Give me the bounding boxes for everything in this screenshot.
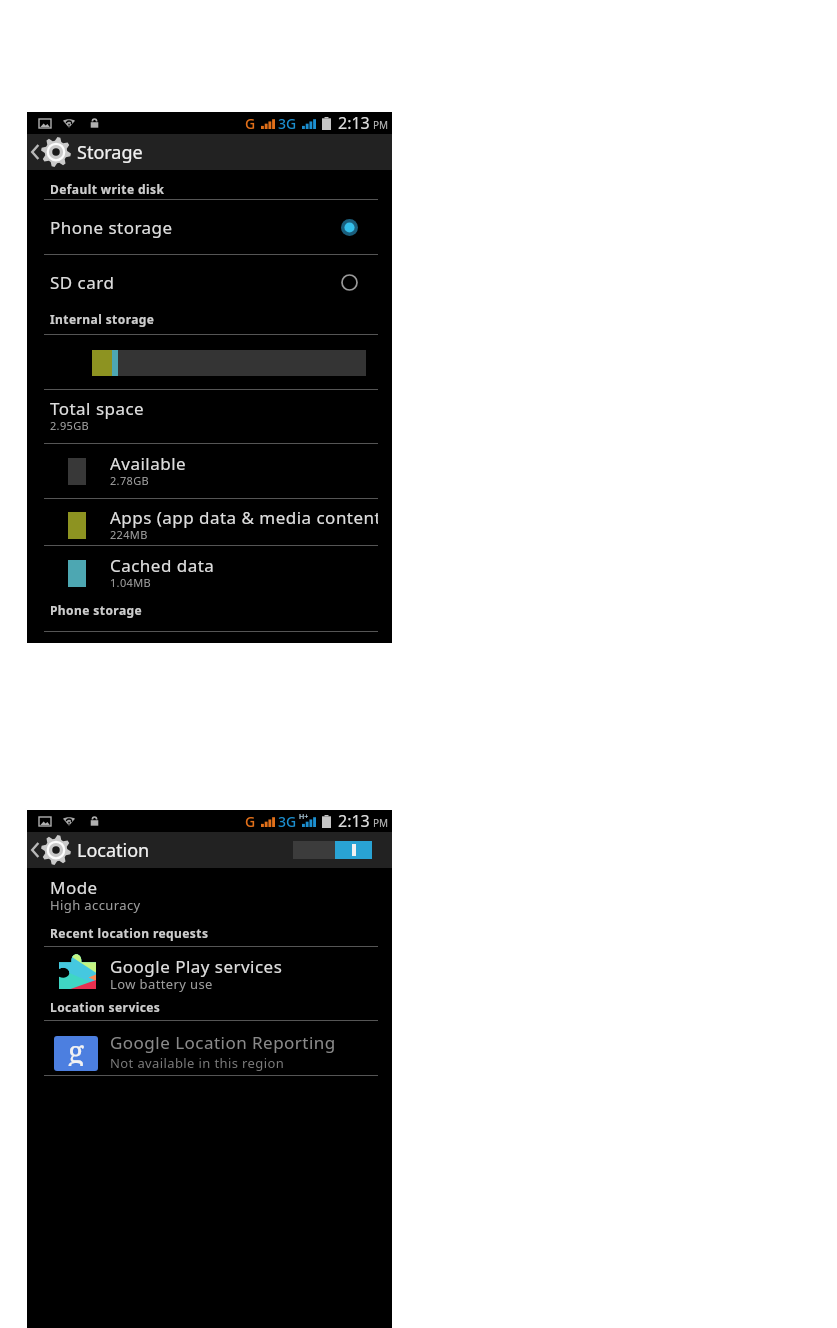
button[interactable]: Location on/off [293, 841, 372, 859]
staticText: 2.95GB [50, 418, 89, 433]
staticText: 3G [278, 114, 297, 133]
staticText: Apps (app data & media content) [110, 506, 378, 529]
button[interactable]: g [27, 1027, 392, 1077]
staticText: Mode [50, 876, 98, 899]
button[interactable]: SD card [27, 255, 392, 309]
staticText: Total space [50, 397, 145, 420]
staticText: Location [77, 838, 150, 863]
button[interactable]: Navigate up, Settings [31, 832, 71, 868]
staticText: 224MB [110, 527, 148, 542]
staticText: Phone storage [50, 216, 173, 239]
staticText: Available [110, 452, 378, 475]
button[interactable]: Total space [27, 391, 392, 443]
staticText: G [245, 114, 256, 133]
button[interactable]: Google Play services [27, 952, 392, 1002]
staticText: 3G [278, 812, 297, 831]
staticText: 1.04MB [110, 575, 151, 590]
button[interactable]: Cached data [27, 545, 392, 595]
button[interactable]: Apps (app data & media content) [27, 498, 392, 548]
staticText: Location services [50, 999, 161, 1015]
staticText: G [245, 812, 256, 831]
staticText: g [68, 1036, 85, 1066]
staticText: Not available in this region [110, 1054, 285, 1072]
staticText: 2:13 [338, 810, 370, 832]
staticText: Internal storage [50, 311, 155, 327]
button[interactable]: Navigate up, Settings [31, 134, 71, 170]
staticText: PM [373, 118, 389, 132]
staticText: 2:13 [338, 112, 370, 134]
button[interactable]: Phone storage [27, 200, 392, 254]
staticText: H+ [299, 812, 309, 822]
staticText: Cached data [110, 554, 378, 577]
staticText: PM [373, 816, 389, 830]
button[interactable]: Available [27, 446, 392, 496]
staticText: High accuracy [50, 896, 141, 914]
other: Phone storage selected [341, 219, 358, 236]
staticText: SD card [50, 271, 115, 294]
staticText: Storage [77, 140, 143, 165]
button[interactable]: Mode [27, 871, 392, 923]
staticText: Google Play services [110, 955, 283, 978]
staticText: Default write disk [50, 181, 165, 197]
staticText: Google Location Reporting [110, 1031, 336, 1054]
staticText: Phone storage [50, 602, 143, 618]
staticText: 2.78GB [110, 473, 149, 488]
staticText: Recent location requests [50, 925, 209, 941]
other: SD card not selected [341, 274, 358, 291]
staticText: Low battery use [110, 975, 213, 993]
